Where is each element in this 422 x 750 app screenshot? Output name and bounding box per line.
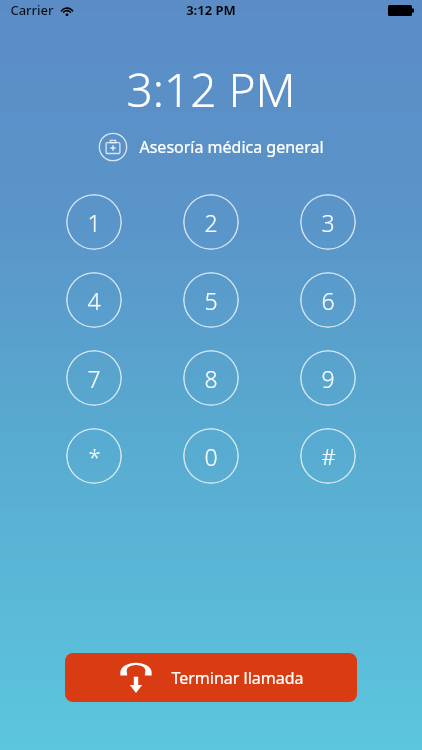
staticText: 2: [204, 207, 218, 238]
staticText: 1: [87, 207, 101, 238]
button[interactable]: End call: [65, 653, 357, 702]
staticText: *: [88, 441, 101, 471]
button[interactable]: 9: [300, 350, 356, 406]
button[interactable]: 4: [66, 272, 122, 328]
button[interactable]: 2: [183, 194, 239, 250]
button[interactable]: 0: [183, 428, 239, 484]
staticText: Terminar llamada: [171, 667, 304, 689]
staticText: 4: [87, 285, 101, 316]
button[interactable]: 3: [300, 194, 356, 250]
staticText: Carrier: [10, 1, 54, 19]
staticText: 3:12 PM: [126, 58, 296, 120]
other: Medical service: [98, 132, 128, 162]
staticText: #: [321, 441, 336, 471]
button[interactable]: 7: [66, 350, 122, 406]
button[interactable]: *: [66, 428, 122, 484]
staticText: 9: [321, 363, 335, 394]
staticText: 6: [321, 285, 335, 316]
button[interactable]: 5: [183, 272, 239, 328]
button[interactable]: Medical service: [92, 130, 330, 164]
staticText: Asesoría médica general: [139, 136, 324, 158]
staticText: 5: [204, 285, 218, 316]
button[interactable]: 6: [300, 272, 356, 328]
staticText: 7: [87, 363, 101, 394]
button[interactable]: 1: [66, 194, 122, 250]
button[interactable]: 8: [183, 350, 239, 406]
staticText: 3:12 PM: [186, 1, 236, 19]
staticText: 0: [204, 441, 218, 472]
button[interactable]: #: [300, 428, 356, 484]
staticText: 3: [321, 207, 335, 238]
staticText: 8: [204, 363, 218, 394]
other: End call: [119, 662, 153, 694]
